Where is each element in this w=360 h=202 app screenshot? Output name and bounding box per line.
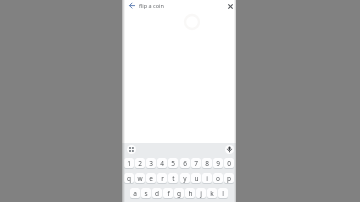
staticText: q [127,174,131,183]
button[interactable] [126,0,138,12]
button[interactable]: 9 [213,158,223,169]
button[interactable]: l [218,188,228,199]
staticText: 5 [171,159,175,168]
staticText: f [167,189,170,198]
staticText: w [137,174,143,183]
staticText: 6 [183,159,187,168]
button[interactable] [225,145,234,154]
staticText: 0 [227,159,231,168]
button[interactable]: 2 [135,158,145,169]
button[interactable]: i [202,173,212,184]
button[interactable]: t [168,173,178,184]
button[interactable]: r [157,173,167,184]
staticText: 7 [194,159,198,168]
button[interactable]: e [146,173,156,184]
button[interactable]: u [191,173,201,184]
button[interactable]: 4 [157,158,167,169]
button[interactable]: 6 [180,158,190,169]
button[interactable]: w [135,173,145,184]
button[interactable]: a [130,188,140,199]
button[interactable] [224,0,236,13]
button[interactable]: 5 [168,158,178,169]
staticText: a [133,189,137,198]
staticText: s [144,189,148,198]
button[interactable]: 0 [224,158,234,169]
button[interactable]: 8 [202,158,212,169]
button[interactable]: j [196,188,206,199]
button[interactable] [127,145,136,154]
button[interactable]: s [141,188,151,199]
button[interactable]: h [185,188,195,199]
staticText: 2 [138,159,142,168]
staticText: y [183,174,187,183]
staticText: p [227,174,231,183]
button[interactable]: p [224,173,234,184]
button[interactable]: f [163,188,173,199]
button[interactable]: g [174,188,184,199]
staticText: t [172,174,175,183]
staticText: l [222,189,224,198]
staticText: 9 [216,159,220,168]
staticText: 3 [149,159,153,168]
staticText: g [177,189,181,198]
staticText: j [200,189,202,198]
button[interactable]: k [207,188,217,199]
staticText: flip a coin [139,2,164,9]
staticText: 1 [127,159,131,168]
staticText: k [210,189,214,198]
staticText: r [161,174,164,183]
button[interactable]: d [152,188,162,199]
button[interactable]: y [180,173,190,184]
button[interactable]: q [124,173,134,184]
staticText: 4 [160,159,164,168]
button[interactable]: 3 [146,158,156,169]
staticText: d [155,189,159,198]
button[interactable]: 7 [191,158,201,169]
button[interactable]: 1 [124,158,134,169]
button[interactable]: o [213,173,223,184]
staticText: e [149,174,153,183]
staticText: h [188,189,193,198]
staticText: u [194,174,199,183]
staticText: i [206,174,208,183]
staticText: o [216,174,220,183]
staticText: 8 [205,159,209,168]
